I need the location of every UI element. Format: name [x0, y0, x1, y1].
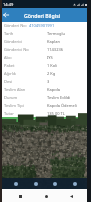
- button[interactable]: Map action 2: [51, 180, 59, 188]
- button[interactable]: Gönderici No: [0, 45, 91, 53]
- button[interactable]: Alıcı: [0, 53, 91, 61]
- staticText: Kapıda: [47, 87, 60, 92]
- button[interactable]: Recents: [15, 191, 25, 201]
- staticText: Gönderici: [4, 39, 23, 44]
- button[interactable]: Teslim Tipi: [0, 101, 91, 109]
- button[interactable]: Back: [66, 191, 76, 201]
- staticText: IYS: [47, 55, 53, 60]
- staticText: Teslim Tipi: [4, 103, 24, 108]
- button[interactable]: Home: [41, 191, 51, 201]
- button[interactable]: Map action 0: [12, 180, 20, 188]
- staticText: Durum: [4, 95, 18, 100]
- button[interactable]: Desi: [0, 77, 91, 85]
- button[interactable]: Durum: [0, 93, 91, 101]
- button[interactable]: Tutar: [0, 109, 91, 117]
- staticText: Alıcı: [4, 55, 12, 60]
- staticText: Teslimatı Onayla: [32, 118, 67, 124]
- button[interactable]: Teslimatı Onayla: [0, 117, 91, 125]
- staticText: Gönderici No: [4, 47, 29, 52]
- staticText: Teslim Edildi: [47, 95, 71, 100]
- button[interactable]: Back: [0, 8, 11, 22]
- button[interactable]: Map action 1: [32, 180, 40, 188]
- staticText: Gönderi Bilgisi: [24, 12, 61, 19]
- staticText: Gönderi No:: [4, 23, 27, 28]
- staticText: 14:49: [3, 2, 14, 7]
- staticText: 3: [47, 79, 50, 84]
- button[interactable]: Tarih: [0, 29, 91, 37]
- staticText: 135,00 TL: [47, 111, 65, 116]
- button[interactable]: Ağırlık: [0, 69, 91, 77]
- staticText: Ağırlık: [4, 71, 16, 76]
- staticText: Tarih: [4, 31, 14, 36]
- button[interactable]: Gönderici: [0, 37, 91, 45]
- button[interactable]: Map action 3: [71, 180, 79, 188]
- staticText: 1143236: [47, 47, 64, 52]
- staticText: Paket: [4, 63, 15, 68]
- staticText: Termoglu: [47, 31, 65, 36]
- staticText: 1 Koli: [47, 63, 58, 68]
- staticText: Tutar: [4, 111, 14, 116]
- staticText: Kaplan: [47, 39, 60, 44]
- button[interactable]: Paket: [0, 61, 91, 69]
- staticText: 41045901991: [29, 23, 55, 28]
- staticText: Desi: [4, 79, 13, 84]
- staticText: Teslim Alan: [4, 87, 26, 92]
- button[interactable]: Teslim Alan: [0, 85, 91, 93]
- staticText: Kapıda Ödemeli: [47, 103, 77, 108]
- staticText: 2 Kg: [47, 71, 56, 76]
